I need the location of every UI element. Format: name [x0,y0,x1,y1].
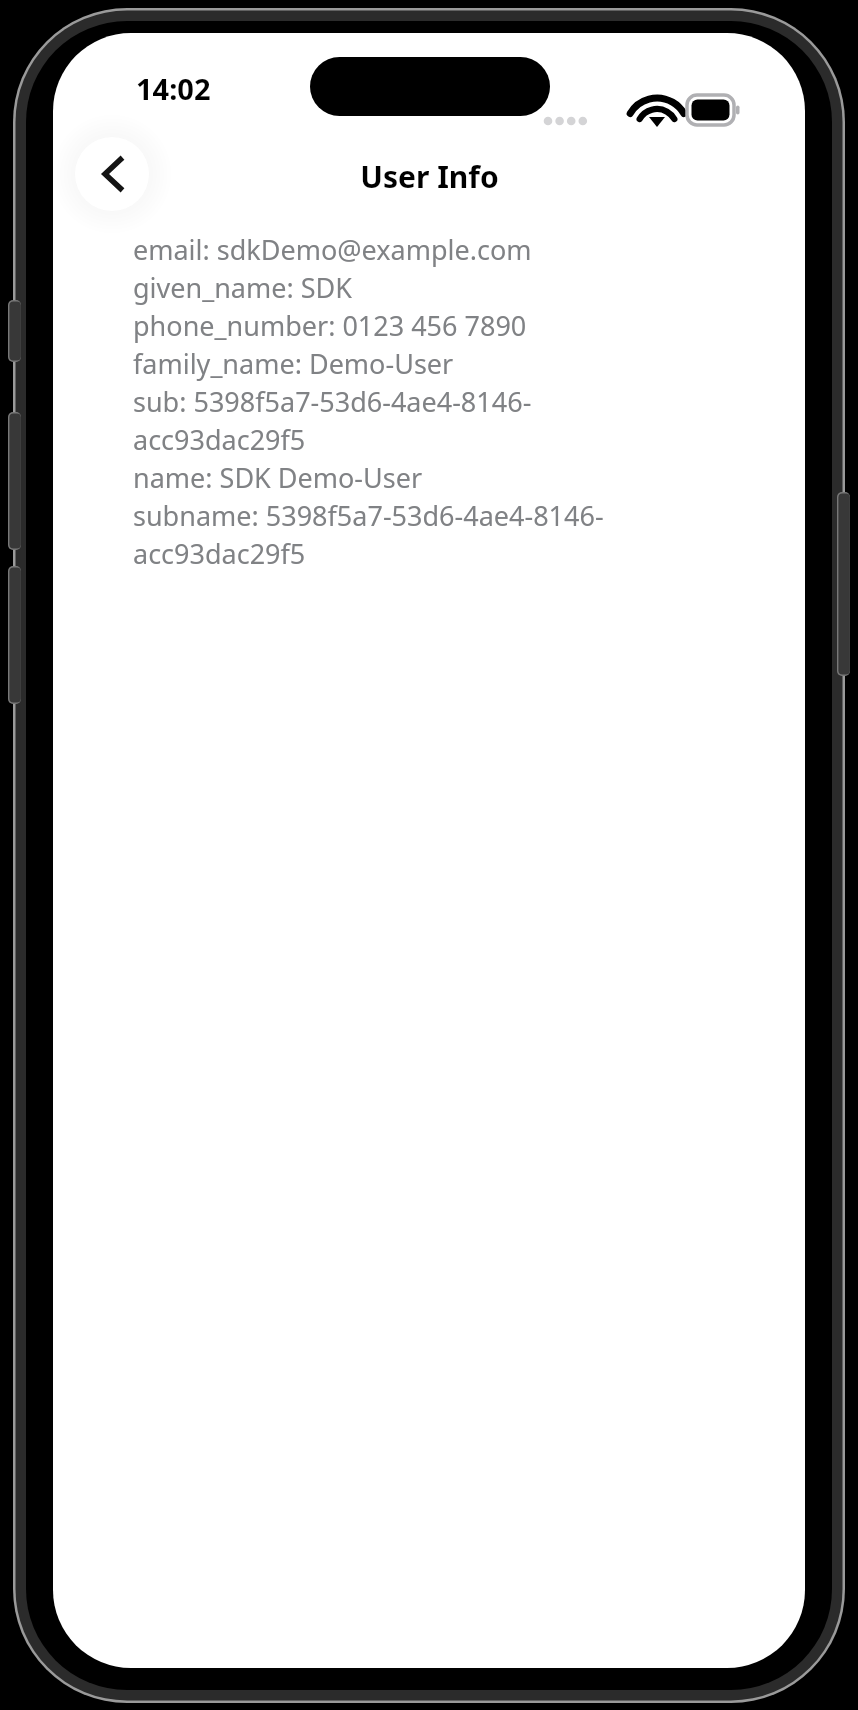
staticText: 14:02 [136,69,211,108]
staticText: email: sdkDemo@example.com [133,231,532,268]
staticText: name: SDK Demo-User [133,459,423,496]
staticText: family_name: Demo-User [133,345,454,382]
button[interactable]: Back [74,136,150,212]
staticText: phone_number: 0123 456 7890 [133,307,527,344]
staticText: sub: 5398f5a7-53d6-4ae4-8146- [133,383,532,420]
staticText: User Info [360,156,499,197]
staticText: given_name: SDK [133,269,352,306]
staticText: acc93dac29f5 [133,535,306,572]
staticText: subname: 5398f5a7-53d6-4ae4-8146- [133,497,604,534]
staticText: acc93dac29f5 [133,421,306,458]
